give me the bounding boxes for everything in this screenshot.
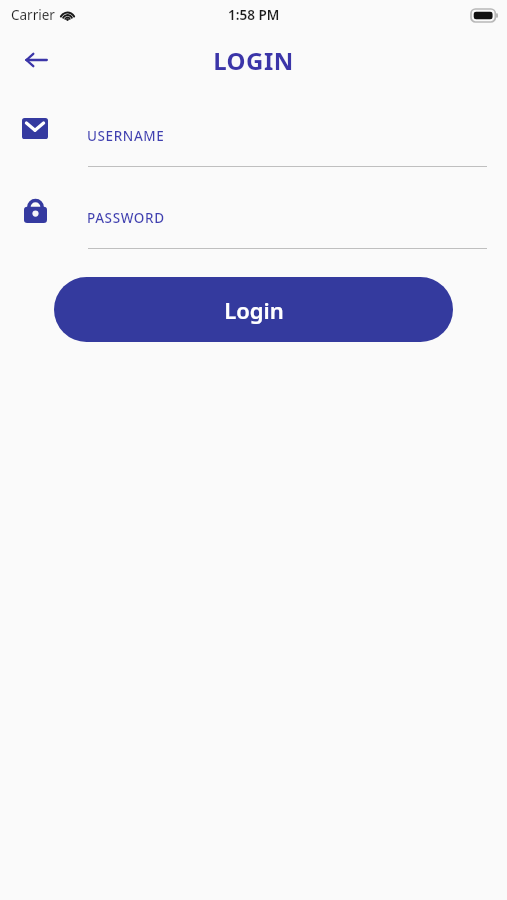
button[interactable]: Password: [14, 190, 56, 228]
staticText: Carrier: [11, 6, 55, 24]
staticText: LOGIN: [213, 44, 294, 77]
staticText: USERNAME: [87, 127, 165, 145]
button[interactable]: Username: [14, 109, 56, 147]
button[interactable]: [88, 202, 487, 249]
button[interactable]: Back: [16, 40, 56, 80]
button[interactable]: Login: [54, 277, 453, 342]
staticText: 1:58 PM: [228, 6, 280, 24]
staticText: PASSWORD: [87, 209, 165, 227]
button[interactable]: [88, 120, 487, 167]
staticText: Login: [224, 295, 284, 325]
